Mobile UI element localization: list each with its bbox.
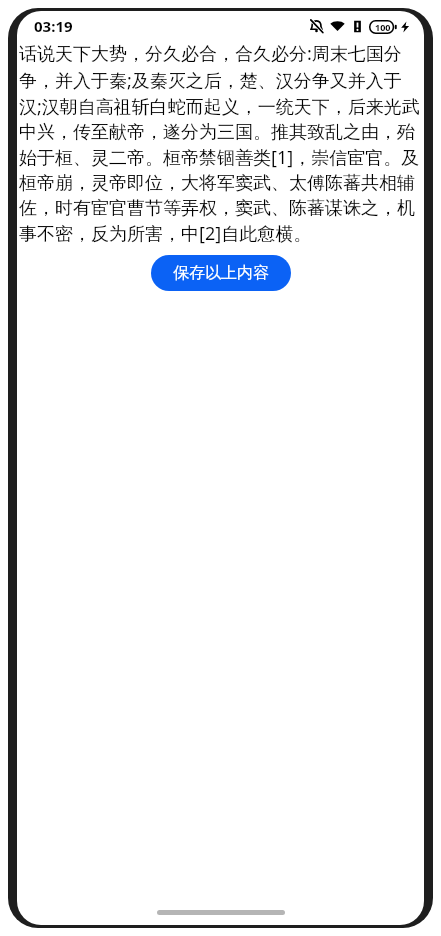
staticText: 100 [375, 21, 391, 33]
staticText: 保存以上内容 [173, 263, 269, 283]
staticText: 话说天下大势，分久必合，合久必分:周末七国分争，并入于秦;及秦灭之后，楚、汉分争… [19, 41, 422, 245]
button[interactable]: 保存以上内容 [151, 255, 291, 291]
staticText: 03:19 [34, 16, 73, 36]
